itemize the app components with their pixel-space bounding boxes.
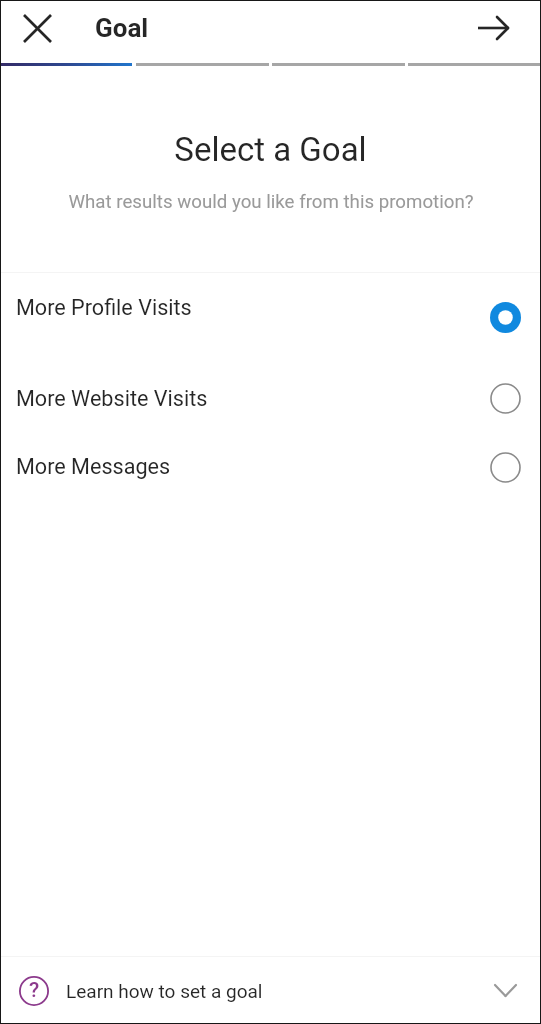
button[interactable]: ? (0, 957, 541, 1024)
staticText: Goal (95, 13, 149, 43)
staticText: What results would you like from this pr… (68, 191, 474, 213)
staticText: Select a Goal (174, 130, 367, 169)
staticText: More Profile Visits (16, 295, 192, 320)
staticText: ? (29, 978, 40, 1003)
staticText: More Messages (16, 454, 171, 479)
staticText: More Website Visits (16, 386, 208, 411)
staticText: Learn how to set a goal (66, 980, 263, 1002)
button[interactable]: More Messages (0, 433, 541, 501)
button[interactable]: More Profile Visits (0, 283, 541, 351)
button[interactable]: More Website Visits (0, 364, 541, 432)
button[interactable]: Close (9, 0, 65, 56)
button[interactable]: Next (465, 0, 521, 56)
